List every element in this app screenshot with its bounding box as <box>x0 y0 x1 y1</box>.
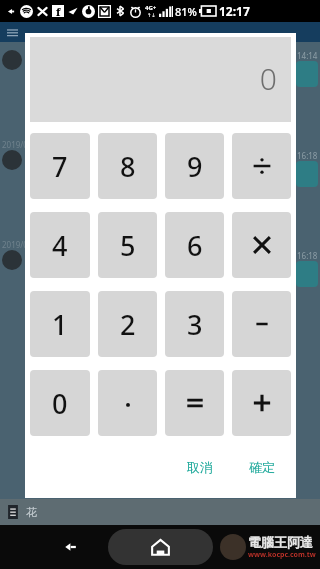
button[interactable]: 7 <box>30 133 90 199</box>
staticText: www.kocpc.com.tw <box>248 550 316 560</box>
staticText: 81% <box>175 4 197 19</box>
button[interactable]: Home <box>108 529 213 565</box>
staticText: ↑↓ <box>147 12 156 18</box>
button[interactable]: 6 <box>165 212 224 278</box>
staticText: 0 <box>259 58 277 99</box>
button[interactable] <box>165 370 224 436</box>
staticText: 6 <box>187 227 203 264</box>
staticText: 電腦王阿達 <box>248 534 313 550</box>
button[interactable] <box>98 370 157 436</box>
staticText: 16:18 <box>297 250 318 261</box>
staticText: 4G+ <box>145 4 157 12</box>
button[interactable] <box>232 291 291 357</box>
staticText: 2 <box>120 306 136 343</box>
button[interactable]: 0 <box>30 370 90 436</box>
button[interactable]: 取消 <box>181 453 219 481</box>
button[interactable]: 4 <box>30 212 90 278</box>
staticText: 16:18 <box>297 150 318 161</box>
staticText: 取消 <box>187 459 213 475</box>
button[interactable]: 2 <box>98 291 157 357</box>
button[interactable]: 5 <box>98 212 157 278</box>
staticText: 0 <box>52 385 68 422</box>
staticText: 14:14 <box>297 50 318 61</box>
button[interactable]: 9 <box>165 133 224 199</box>
button[interactable]: 確定 <box>243 453 281 481</box>
staticText: 1 <box>52 306 68 343</box>
button[interactable]: Back <box>58 533 86 561</box>
staticText: 4 <box>52 227 68 264</box>
staticText: 12:17 <box>219 3 250 19</box>
staticText: 8 <box>120 148 136 185</box>
staticText: 確定 <box>249 459 275 475</box>
button[interactable] <box>232 133 291 199</box>
staticText: 7 <box>52 148 68 185</box>
button[interactable] <box>232 212 291 278</box>
staticText: 5 <box>120 227 136 264</box>
staticText: 2019/02 <box>2 139 33 150</box>
button[interactable]: 3 <box>165 291 224 357</box>
staticText: 2019/02 <box>2 239 33 250</box>
button[interactable]: 8 <box>98 133 157 199</box>
button[interactable] <box>232 370 291 436</box>
staticText: 花 <box>26 505 37 519</box>
staticText: 3 <box>187 306 203 343</box>
staticText: f <box>56 5 61 17</box>
button[interactable]: 1 <box>30 291 90 357</box>
staticText: 9 <box>187 148 203 185</box>
